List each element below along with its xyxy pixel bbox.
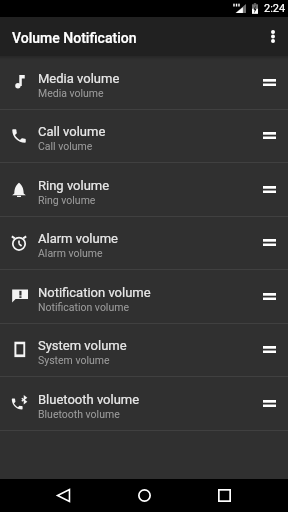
- button[interactable]: Alarm volume: [0, 216, 288, 269]
- button[interactable]: Call volume: [0, 109, 288, 162]
- button[interactable]: More options: [257, 17, 288, 56]
- button[interactable]: Home: [124, 479, 164, 512]
- button[interactable]: Reorder: [250, 323, 288, 376]
- staticText: System volume: [38, 354, 110, 366]
- button[interactable]: Reorder: [250, 216, 288, 269]
- staticText: Ring volume: [38, 194, 96, 206]
- staticText: System volume: [38, 338, 127, 353]
- button[interactable]: Reorder: [250, 56, 288, 109]
- button[interactable]: Notification volume: [0, 270, 288, 323]
- staticText: Notification volume: [38, 285, 151, 300]
- button[interactable]: Recents: [204, 479, 244, 512]
- staticText: Ring volume: [38, 178, 110, 193]
- staticText: Notification volume: [38, 301, 129, 313]
- button[interactable]: System volume: [0, 323, 288, 376]
- button[interactable]: Reorder: [250, 109, 288, 162]
- staticText: Volume Notification: [12, 30, 137, 46]
- button[interactable]: Reorder: [250, 163, 288, 216]
- staticText: 2:24: [264, 2, 286, 15]
- staticText: Bluetooth volume: [38, 408, 120, 420]
- button[interactable]: Ring volume: [0, 163, 288, 216]
- staticText: Bluetooth volume: [38, 392, 140, 407]
- button[interactable]: Back: [43, 479, 83, 512]
- staticText: Alarm volume: [38, 247, 103, 259]
- button[interactable]: Reorder: [250, 270, 288, 323]
- staticText: Alarm volume: [38, 231, 118, 246]
- staticText: Media volume: [38, 87, 104, 99]
- button[interactable]: Bluetooth volume: [0, 377, 288, 430]
- staticText: Media volume: [38, 71, 120, 86]
- button[interactable]: Media volume: [0, 56, 288, 109]
- staticText: Call volume: [38, 140, 93, 152]
- staticText: Call volume: [38, 124, 106, 139]
- button[interactable]: Reorder: [250, 377, 288, 430]
